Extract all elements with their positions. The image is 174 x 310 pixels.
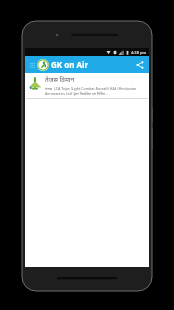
staticText: GK on Air <box>51 59 88 70</box>
button[interactable]: Open navigation drawer <box>28 61 36 69</box>
button[interactable]: तेजस विमान <box>25 73 149 98</box>
staticText: 4:38 pm <box>131 50 147 55</box>
button[interactable]: Share <box>133 58 146 71</box>
staticText: तेजस विमान <box>45 75 75 84</box>
staticText: तेजस LCA Tejas (Light Combat Aircraft) H… <box>45 86 146 96</box>
